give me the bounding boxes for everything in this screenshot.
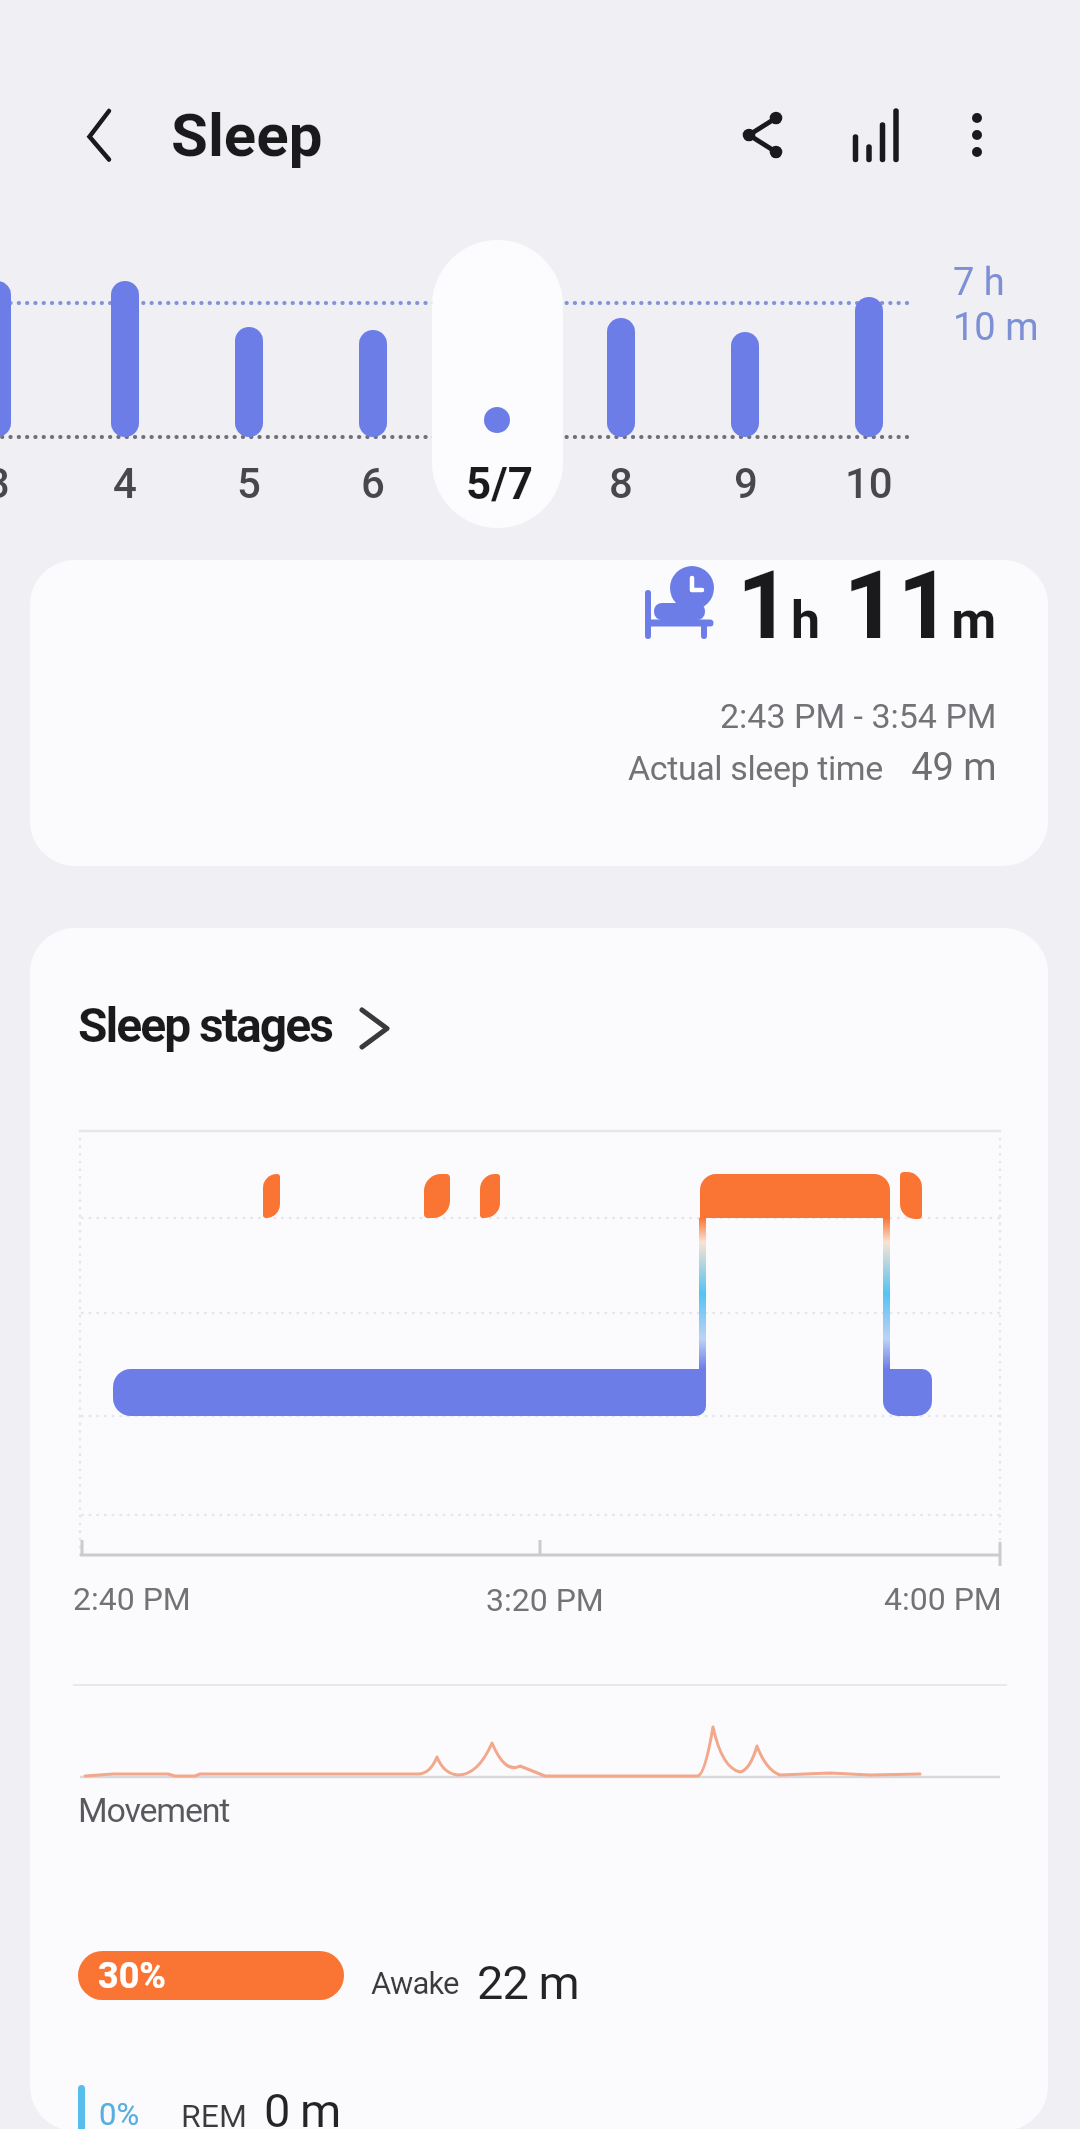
button[interactable] [683,240,807,528]
staticText: 2:43 PM - 3:54 PM [720,696,997,736]
button[interactable] [559,240,683,528]
staticText: 0 m [264,2083,341,2129]
staticText: REM [181,2097,247,2129]
button[interactable] [736,105,792,165]
staticText: Awake [371,1965,459,2001]
button[interactable] [63,240,187,528]
staticText: 3:20 PM [486,1581,604,1619]
staticText: 5/7 [466,458,533,508]
staticText: 2:40 PM [73,1580,191,1618]
button[interactable] [60,985,420,1060]
staticText: 10 [845,459,893,508]
button[interactable] [187,240,311,528]
button[interactable] [432,240,563,528]
staticText: 30% [98,1955,166,1997]
staticText: 10 m [953,305,1039,350]
staticText: 9 [734,459,758,508]
button[interactable] [845,100,909,166]
staticText: 1h 11m [737,551,997,661]
button[interactable] [311,240,435,528]
staticText: Sleep [171,100,323,170]
staticText: 6 [361,459,385,508]
staticText: 4:00 PM [884,1580,1002,1618]
button[interactable] [30,560,1048,866]
staticText: Actual sleep time 49 m [628,745,997,790]
staticText: 3 [0,459,10,508]
staticText: 8 [609,459,633,508]
staticText: Movement [78,1790,230,1830]
staticText: 7 h [953,260,1005,305]
button[interactable] [76,103,128,163]
staticText: 4 [113,459,137,508]
button[interactable] [953,98,1001,166]
staticText: Sleep stages [78,997,332,1053]
staticText: 22 m [477,1955,579,2010]
button[interactable] [807,240,931,528]
staticText: 5 [237,459,261,508]
staticText: 0% [99,2096,140,2129]
